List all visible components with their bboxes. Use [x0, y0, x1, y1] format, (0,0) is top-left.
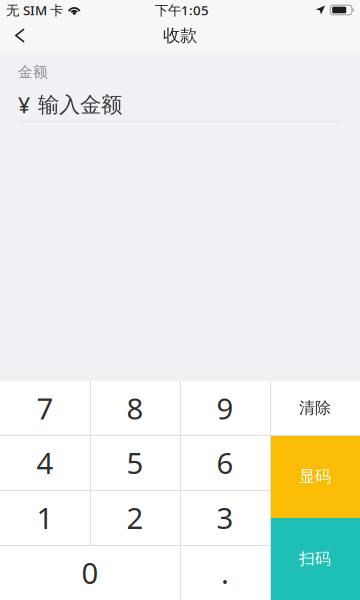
staticText: 1: [36, 498, 53, 537]
button[interactable]: .: [180, 545, 270, 600]
staticText: 收款: [163, 25, 197, 46]
staticText: 下午1:05: [155, 1, 209, 19]
staticText: ¥: [18, 91, 30, 119]
staticText: 2: [126, 498, 143, 537]
staticText: 输入金额: [38, 92, 122, 118]
button[interactable]: 显码: [270, 435, 360, 518]
button[interactable]: 1: [0, 490, 90, 545]
button[interactable]: 6: [180, 435, 270, 490]
staticText: 3: [216, 498, 233, 537]
button[interactable]: 0: [0, 545, 180, 600]
button[interactable]: 返回: [0, 20, 40, 53]
button[interactable]: 7: [0, 381, 90, 435]
button[interactable]: 5: [90, 435, 180, 490]
staticText: 8: [126, 388, 143, 427]
button[interactable]: 4: [0, 435, 90, 490]
staticText: 4: [36, 443, 53, 482]
staticText: 0: [81, 553, 98, 592]
staticText: 无 SIM 卡: [6, 1, 63, 19]
button[interactable]: 清除: [270, 381, 360, 435]
staticText: 9: [216, 388, 233, 427]
button[interactable]: 扫码: [270, 518, 360, 600]
staticText: 金额: [18, 63, 48, 81]
button[interactable]: 3: [180, 490, 270, 545]
staticText: 7: [36, 388, 53, 427]
staticText: .: [221, 553, 229, 592]
staticText: 显码: [299, 467, 331, 486]
button[interactable]: 8: [90, 381, 180, 435]
staticText: 5: [126, 443, 143, 482]
staticText: 6: [216, 443, 233, 482]
button[interactable]: 9: [180, 381, 270, 435]
button[interactable]: 2: [90, 490, 180, 545]
staticText: 扫码: [299, 549, 331, 569]
staticText: 清除: [299, 398, 331, 418]
